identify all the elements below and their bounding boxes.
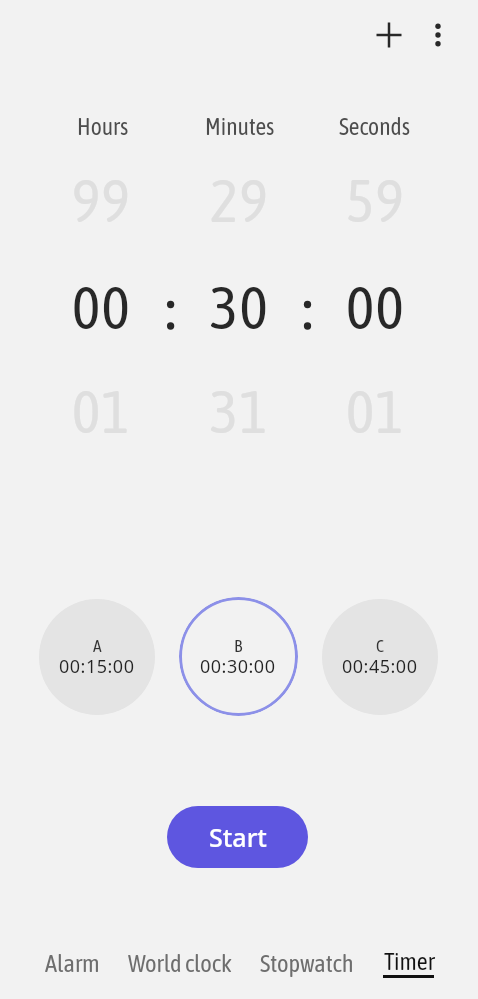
staticText: 29: [210, 166, 269, 235]
button[interactable]: Timer: [369, 938, 449, 986]
button[interactable]: [417, 11, 458, 59]
staticText: 00:30:00: [200, 654, 276, 679]
staticText: 31: [210, 377, 269, 446]
staticText: 00:45:00: [342, 654, 418, 679]
staticText: 30: [210, 273, 269, 342]
button[interactable]: Alarm: [22, 938, 122, 987]
staticText: B: [234, 636, 243, 656]
staticText: Timer: [384, 948, 435, 976]
button[interactable]: Stopwatch: [249, 938, 364, 987]
button[interactable]: [39, 599, 155, 715]
staticText: 00:15:00: [59, 654, 135, 679]
staticText: Minutes: [205, 113, 275, 140]
button[interactable]: 00: [41, 247, 161, 367]
staticText: A: [93, 636, 102, 656]
staticText: 99: [72, 166, 131, 235]
staticText: Hours: [77, 113, 129, 140]
staticText: Start: [209, 820, 267, 854]
button[interactable]: [365, 11, 413, 59]
staticText: 01: [72, 377, 131, 446]
button[interactable]: World clock: [117, 938, 242, 987]
staticText: 59: [346, 166, 405, 235]
button[interactable]: [179, 597, 298, 716]
staticText: 00: [72, 273, 131, 342]
staticText: Seconds: [339, 113, 410, 140]
staticText: Alarm: [45, 949, 100, 977]
staticText: Stopwatch: [260, 949, 354, 977]
staticText: C: [376, 636, 384, 656]
button[interactable]: 00: [315, 247, 435, 367]
button[interactable]: [322, 599, 438, 715]
staticText: 01: [346, 377, 405, 446]
staticText: World clock: [128, 949, 232, 977]
staticText: 00: [346, 273, 405, 342]
button[interactable]: Start: [167, 806, 308, 868]
button[interactable]: 30: [179, 247, 299, 367]
